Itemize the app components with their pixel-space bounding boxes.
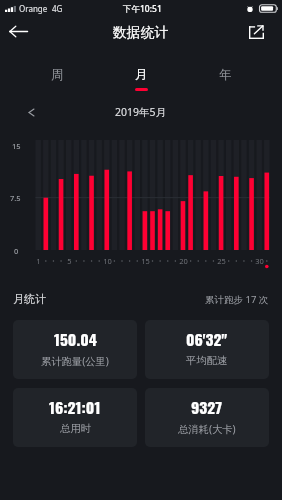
- staticText: 累计跑步 17 次: [205, 293, 269, 306]
- button[interactable]: Back: [0, 16, 37, 47]
- staticText: 0: [14, 246, 19, 256]
- staticText: 9327: [191, 396, 223, 419]
- button[interactable]: 150.04: [13, 320, 137, 379]
- staticText: 月: [135, 67, 148, 83]
- staticText: 15: [141, 256, 150, 266]
- staticText: 7.5: [10, 193, 21, 203]
- staticText: 平均配速: [186, 354, 228, 367]
- button[interactable]: 月: [99, 62, 183, 92]
- staticText: 年: [219, 67, 232, 83]
- staticText: 总用时: [60, 422, 91, 435]
- staticText: 数据统计: [113, 24, 169, 41]
- staticText: 1: [36, 256, 41, 266]
- staticText: 5: [67, 256, 72, 266]
- staticText: 月统计: [13, 292, 46, 306]
- staticText: 周: [51, 67, 64, 83]
- staticText: 累计跑量(公里): [41, 354, 109, 368]
- staticText: 25: [217, 256, 226, 266]
- button[interactable]: 周: [15, 62, 99, 92]
- staticText: 4G: [52, 3, 63, 14]
- staticText: 20: [179, 256, 188, 266]
- button[interactable]: 年: [183, 62, 267, 92]
- staticText: 06'32": [186, 328, 228, 351]
- button[interactable]: 16:21:01: [13, 388, 137, 447]
- staticText: 16:21:01: [49, 396, 101, 419]
- staticText: 30: [255, 256, 264, 266]
- staticText: 下午10:51: [123, 3, 162, 15]
- button[interactable]: Share: [236, 16, 276, 47]
- staticText: 150.04: [54, 328, 97, 351]
- staticText: 总消耗(大卡): [178, 422, 236, 436]
- button[interactable]: Previous month: [20, 101, 42, 123]
- button[interactable]: 9327: [145, 388, 269, 447]
- staticText: 2019年5月: [115, 105, 167, 119]
- staticText: 10: [103, 256, 112, 266]
- button[interactable]: 06'32": [145, 320, 269, 379]
- staticText: Orange: [19, 3, 48, 14]
- staticText: 15: [12, 141, 21, 151]
